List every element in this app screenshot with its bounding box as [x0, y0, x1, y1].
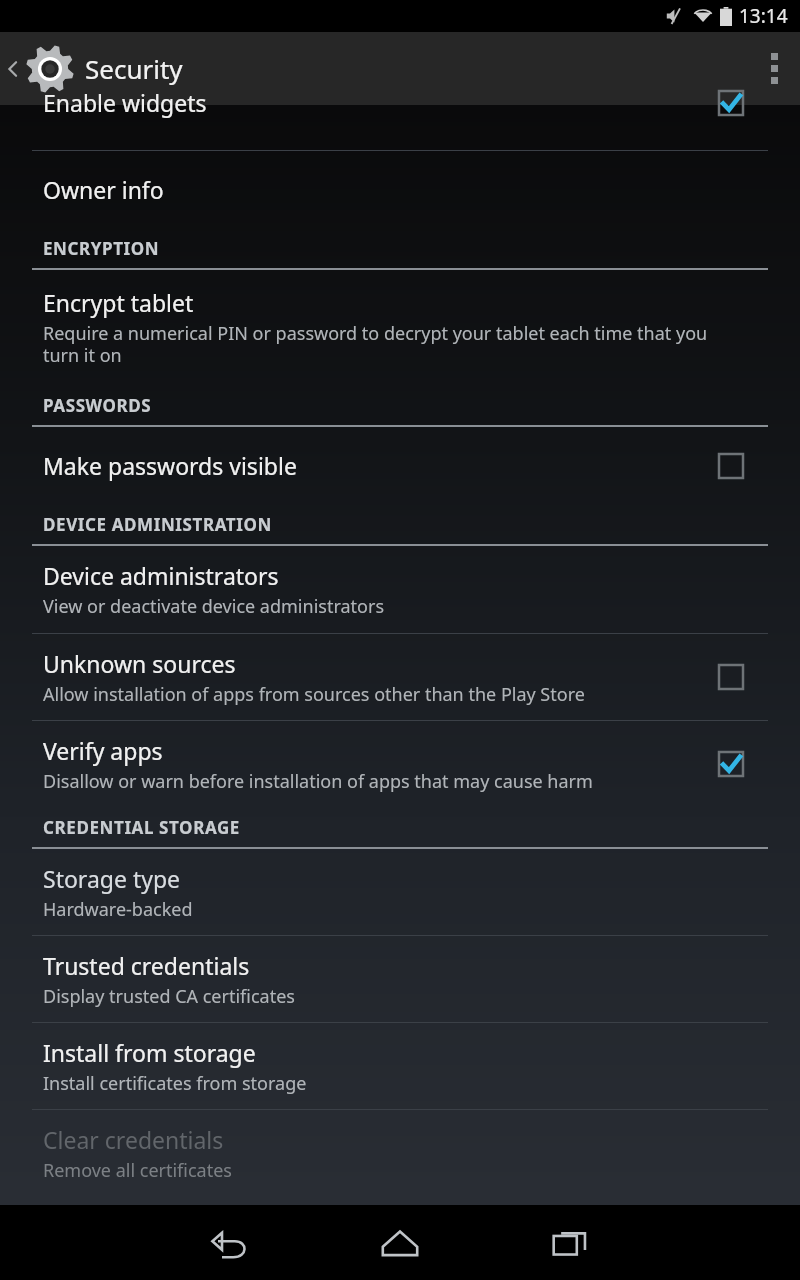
staticText: Verify apps: [43, 735, 163, 766]
staticText: Hardware-backed: [43, 897, 193, 922]
button[interactable]: Recent apps: [530, 1205, 610, 1280]
button[interactable]: Owner info: [0, 151, 800, 228]
button[interactable]: Device administrators: [0, 546, 800, 633]
staticText: Device administrators: [43, 560, 279, 591]
staticText: 13:14: [739, 3, 788, 29]
staticText: Enable widgets: [43, 87, 207, 118]
staticText: Trusted credentials: [43, 950, 250, 981]
staticText: Require a numerical PIN or password to d…: [43, 321, 745, 368]
button[interactable]: Storage type: [0, 849, 800, 935]
button[interactable]: Home: [360, 1205, 440, 1280]
staticText: Storage type: [43, 863, 181, 894]
staticText: Owner info: [43, 174, 164, 205]
staticText: PASSWORDS: [43, 394, 152, 417]
staticText: View or deactivate device administrators: [43, 594, 385, 619]
staticText: Security: [85, 51, 183, 86]
staticText: Allow installation of apps from sources …: [43, 682, 585, 707]
staticText: Display trusted CA certificates: [43, 984, 295, 1009]
staticText: Encrypt tablet: [43, 287, 194, 318]
staticText: CREDENTIAL STORAGE: [43, 816, 240, 839]
staticText: DEVICE ADMINISTRATION: [43, 513, 272, 536]
button[interactable]: Enable widgets: [0, 80, 800, 125]
button[interactable]: Trusted credentials: [0, 936, 800, 1022]
button[interactable]: Clear credentials: [0, 1110, 800, 1196]
button[interactable]: Back: [190, 1205, 270, 1280]
button[interactable]: Encrypt tablet: [0, 270, 800, 385]
staticText: Remove all certificates: [43, 1158, 232, 1183]
button[interactable]: Navigate up: [0, 33, 86, 105]
button[interactable]: More options: [749, 39, 800, 98]
staticText: Install certificates from storage: [43, 1071, 307, 1096]
button[interactable]: Install from storage: [0, 1023, 800, 1109]
staticText: Disallow or warn before installation of …: [43, 769, 593, 794]
button[interactable]: Make passwords visible: [0, 427, 800, 504]
button[interactable]: Verify apps: [0, 721, 800, 807]
staticText: Install from storage: [43, 1037, 256, 1068]
staticText: ENCRYPTION: [43, 237, 160, 260]
button[interactable]: Unknown sources: [0, 634, 800, 720]
staticText: Unknown sources: [43, 648, 236, 679]
staticText: Make passwords visible: [43, 450, 297, 481]
staticText: Clear credentials: [43, 1124, 224, 1155]
